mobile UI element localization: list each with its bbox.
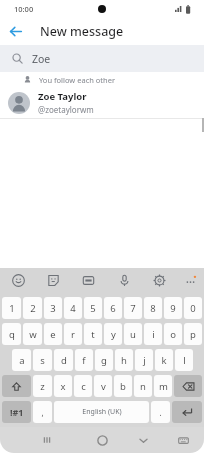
- button[interactable]: g: [95, 349, 113, 371]
- button[interactable]: c: [74, 375, 92, 397]
- button[interactable]: Recents: [36, 429, 58, 451]
- button[interactable]: o: [164, 323, 182, 345]
- button[interactable]: Back: [0, 18, 30, 45]
- button[interactable]: Hide keyboard: [132, 429, 154, 451]
- button[interactable]: x: [54, 375, 72, 397]
- button[interactable]: Zoe Taylor: [0, 87, 204, 118]
- button[interactable]: .: [151, 401, 170, 423]
- staticText: @zoetaylorwm: [38, 104, 94, 115]
- staticText: 9: [170, 302, 176, 315]
- button[interactable]: Voice input: [112, 268, 136, 292]
- staticText: v: [101, 380, 106, 393]
- button[interactable]: GIF: [76, 268, 100, 292]
- staticText: 7: [130, 302, 136, 315]
- button[interactable]: e: [44, 323, 62, 345]
- staticText: k: [161, 354, 167, 367]
- button[interactable]: n: [134, 375, 152, 397]
- staticText: .: [159, 407, 162, 418]
- staticText: 1: [9, 302, 15, 315]
- button[interactable]: m: [154, 375, 172, 397]
- staticText: ,: [41, 407, 44, 418]
- staticText: h: [121, 354, 127, 367]
- button[interactable]: p: [184, 323, 202, 345]
- button[interactable]: 3: [44, 297, 62, 319]
- staticText: 10:00: [14, 4, 34, 14]
- button[interactable]: ,: [33, 401, 52, 423]
- button[interactable]: Zoe: [0, 45, 204, 72]
- staticText: 0: [190, 302, 196, 315]
- staticText: l: [183, 354, 186, 367]
- staticText: m: [159, 380, 168, 393]
- button[interactable]: Change keyboard: [172, 429, 194, 451]
- button[interactable]: 4: [64, 297, 82, 319]
- staticText: You follow each other: [39, 75, 116, 85]
- staticText: t: [91, 328, 95, 341]
- button[interactable]: 6: [104, 297, 122, 319]
- button[interactable]: k: [155, 349, 173, 371]
- button[interactable]: b: [114, 375, 132, 397]
- staticText: 5: [90, 302, 96, 315]
- staticText: p: [190, 328, 196, 341]
- staticText: 8: [150, 302, 156, 315]
- button[interactable]: Shift: [2, 375, 31, 397]
- staticText: n: [140, 380, 146, 393]
- button[interactable]: q: [2, 323, 21, 345]
- button[interactable]: r: [64, 323, 82, 345]
- button[interactable]: t: [84, 323, 102, 345]
- staticText: j: [143, 354, 146, 367]
- button[interactable]: s: [33, 349, 52, 371]
- staticText: i: [152, 328, 155, 341]
- staticText: Zoe: [32, 52, 51, 66]
- staticText: o: [170, 328, 176, 341]
- button[interactable]: More options: [178, 268, 202, 292]
- staticText: z: [40, 380, 45, 393]
- button[interactable]: 1: [2, 297, 21, 319]
- button[interactable]: Backspace: [174, 375, 202, 397]
- button[interactable]: j: [135, 349, 153, 371]
- button[interactable]: Stickers: [41, 268, 65, 292]
- button[interactable]: h: [115, 349, 133, 371]
- staticText: Zoe Taylor: [38, 90, 87, 103]
- button[interactable]: Home: [91, 429, 113, 451]
- button[interactable]: i: [144, 323, 162, 345]
- staticText: w: [29, 328, 37, 341]
- button[interactable]: z: [33, 375, 52, 397]
- staticText: b: [120, 380, 126, 393]
- staticText: 4: [70, 302, 76, 315]
- button[interactable]: 8: [144, 297, 162, 319]
- staticText: x: [60, 380, 66, 393]
- button[interactable]: f: [75, 349, 93, 371]
- button[interactable]: 9: [164, 297, 182, 319]
- staticText: !#1: [10, 406, 24, 418]
- staticText: q: [9, 328, 15, 341]
- button[interactable]: w: [23, 323, 42, 345]
- staticText: g: [101, 354, 107, 367]
- button[interactable]: v: [94, 375, 112, 397]
- staticText: u: [130, 328, 136, 341]
- staticText: y: [111, 328, 116, 341]
- button[interactable]: 0: [184, 297, 202, 319]
- button[interactable]: Emoji: [6, 268, 30, 292]
- staticText: c: [81, 380, 86, 393]
- button[interactable]: u: [124, 323, 142, 345]
- button[interactable]: Symbols: [2, 401, 31, 423]
- button[interactable]: l: [175, 349, 193, 371]
- button[interactable]: 5: [84, 297, 102, 319]
- staticText: English (UK): [82, 407, 122, 417]
- staticText: 3: [50, 302, 56, 315]
- staticText: d: [61, 354, 67, 367]
- button[interactable]: y: [104, 323, 122, 345]
- button[interactable]: a: [12, 349, 31, 371]
- button[interactable]: Settings: [147, 268, 171, 292]
- staticText: f: [82, 354, 86, 367]
- button[interactable]: 2: [23, 297, 42, 319]
- staticText: a: [19, 354, 25, 367]
- staticText: New message: [40, 23, 124, 40]
- button[interactable]: d: [54, 349, 73, 371]
- button[interactable]: 7: [124, 297, 142, 319]
- button[interactable]: Enter: [172, 401, 202, 423]
- staticText: 6: [110, 302, 116, 315]
- staticText: s: [40, 354, 45, 367]
- staticText: r: [71, 328, 75, 341]
- button[interactable]: English (UK): [54, 401, 149, 423]
